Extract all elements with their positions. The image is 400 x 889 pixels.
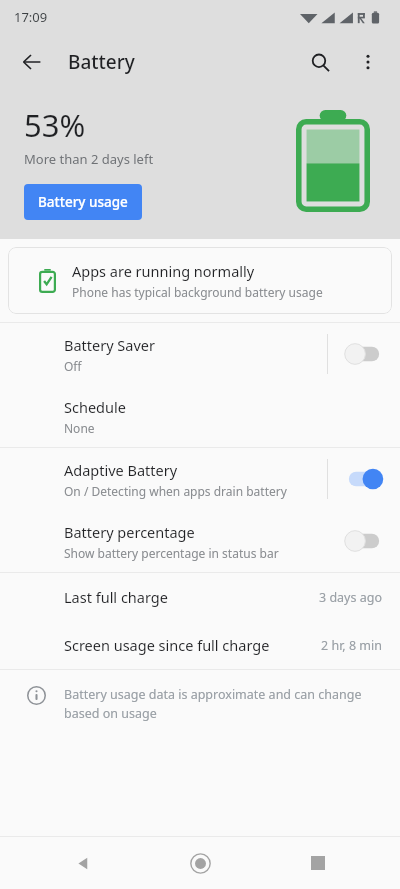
staticText: Apps are running normally (72, 261, 255, 281)
staticText: None (64, 420, 95, 436)
button[interactable]: Screen usage since full charge (0, 621, 400, 669)
staticText: based on usage (64, 705, 157, 722)
staticText: On / Detecting when apps drain battery (64, 483, 287, 499)
button[interactable]: Battery Saver toggle (328, 323, 400, 385)
staticText: Show battery percentage in status bar (64, 545, 279, 561)
button[interactable]: Back (8, 38, 56, 86)
staticText: Phone has typical background battery usa… (72, 284, 323, 300)
staticText: 2 hr, 8 min (321, 637, 382, 654)
staticText: Battery percentage (64, 522, 195, 542)
button[interactable]: Battery percentage (0, 510, 400, 572)
button[interactable]: Battery usage (24, 184, 142, 220)
staticText: Battery Saver (64, 335, 155, 355)
button[interactable]: Apps are running normally (8, 247, 392, 314)
staticText: Battery usage data is approximate and ca… (64, 686, 362, 703)
button[interactable]: Search (296, 38, 344, 86)
button[interactable]: Battery percentage toggle (328, 510, 400, 572)
staticText: Screen usage since full charge (64, 635, 270, 655)
staticText: More than 2 days left (24, 150, 154, 168)
button[interactable]: Adaptive Battery toggle (328, 448, 400, 510)
staticText: Battery usage (38, 193, 128, 211)
button[interactable]: Last full charge (0, 573, 400, 621)
staticText: 17:09 (14, 8, 48, 26)
button[interactable]: Adaptive Battery (0, 448, 400, 510)
staticText: Last full charge (64, 587, 168, 607)
staticText: Battery (68, 49, 135, 75)
button[interactable]: Recents (283, 837, 353, 889)
button[interactable]: Back (48, 837, 118, 889)
staticText: Schedule (64, 397, 126, 417)
staticText: Adaptive Battery (64, 460, 178, 480)
staticText: 3 days ago (319, 589, 382, 606)
staticText: Off (64, 358, 82, 374)
button[interactable]: More options (344, 38, 392, 86)
button[interactable]: Schedule (0, 385, 400, 447)
staticText: 53% (24, 104, 86, 146)
button[interactable]: Home (165, 837, 235, 889)
button[interactable]: Battery Saver (0, 323, 400, 385)
